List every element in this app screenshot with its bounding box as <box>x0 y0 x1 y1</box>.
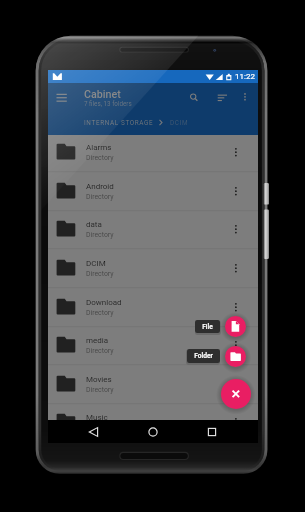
staticText: Directory <box>86 347 114 355</box>
button[interactable]: File <box>195 320 220 333</box>
button[interactable]: Music <box>48 403 258 420</box>
staticText: media <box>86 336 109 345</box>
button[interactable]: Open navigation drawer <box>54 88 73 107</box>
button[interactable]: Folder <box>187 349 220 363</box>
staticText: Music <box>86 413 108 420</box>
button[interactable]: New folder <box>225 346 246 367</box>
staticText: Android <box>86 182 114 191</box>
staticText: Directory <box>86 154 114 162</box>
button[interactable]: Alarms <box>48 135 258 172</box>
button[interactable]: Breadcrumb separator <box>157 118 166 127</box>
staticText: Directory <box>86 386 114 394</box>
staticText: DCIM <box>86 259 106 268</box>
button[interactable]: DCIM <box>48 249 258 288</box>
button[interactable]: Back <box>83 422 103 442</box>
button[interactable]: New file <box>225 316 246 337</box>
staticText: File <box>202 323 213 331</box>
button[interactable]: Recent apps <box>202 422 222 442</box>
staticText: Alarms <box>86 143 112 152</box>
button[interactable]: Download <box>48 288 258 327</box>
staticText: Download <box>86 298 122 307</box>
staticText: Directory <box>86 231 114 239</box>
button[interactable]: Android <box>48 172 258 211</box>
staticText: 11:22 <box>235 72 255 81</box>
staticText: Cabinet <box>84 88 121 101</box>
staticText: INTERNAL STORAGE <box>84 119 154 127</box>
button[interactable]: Close actions <box>221 379 251 409</box>
button[interactable]: media <box>48 326 258 365</box>
button[interactable]: Sort <box>213 88 231 106</box>
button[interactable]: Home <box>143 422 163 442</box>
staticText: Directory <box>86 309 114 317</box>
button[interactable]: Movies <box>48 365 258 404</box>
staticText: data <box>86 220 102 229</box>
button[interactable]: data <box>48 210 258 249</box>
staticText: Directory <box>86 270 114 278</box>
button[interactable]: Search <box>185 88 203 106</box>
staticText: DCIM <box>170 119 189 127</box>
staticText: 7 files, 13 folders <box>84 100 132 107</box>
button[interactable]: More options <box>236 88 254 106</box>
staticText: Directory <box>86 193 114 201</box>
staticText: Folder <box>194 352 213 360</box>
staticText: Movies <box>86 375 112 384</box>
